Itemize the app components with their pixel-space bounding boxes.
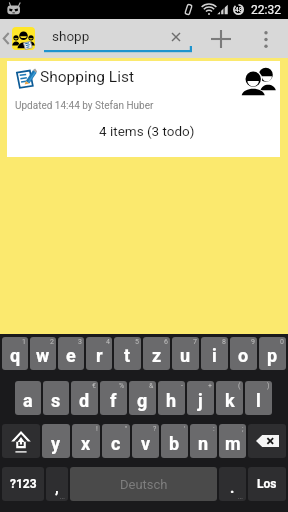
staticText: 48 <box>235 6 243 14</box>
button[interactable]: o <box>230 337 257 370</box>
button[interactable]: Shift <box>2 424 40 458</box>
staticText: 5 <box>135 338 139 346</box>
button[interactable]: u <box>172 337 199 370</box>
staticText: v <box>141 433 151 454</box>
button[interactable]: h <box>158 381 185 415</box>
button[interactable]: j <box>187 381 214 415</box>
staticText: ' <box>184 425 186 433</box>
staticText: s <box>51 390 61 411</box>
button[interactable]: q <box>2 337 28 370</box>
staticText: x <box>81 433 91 454</box>
staticText: b <box>169 433 180 454</box>
staticText: 0 <box>280 338 284 346</box>
staticText: , <box>55 479 59 497</box>
button[interactable]: s <box>43 381 69 415</box>
staticText: Los <box>257 477 277 491</box>
button[interactable]: v <box>132 424 159 458</box>
staticText: f <box>110 390 117 411</box>
staticText: 3 <box>78 338 82 346</box>
button[interactable]: Backspace <box>248 424 286 458</box>
staticText: 4 items (3 todo) <box>99 123 195 139</box>
button[interactable]: t <box>114 337 141 370</box>
staticText: € <box>92 382 96 390</box>
button[interactable]: z <box>143 337 170 370</box>
button[interactable]: g <box>129 381 156 415</box>
staticText: l <box>256 390 261 411</box>
staticText: ... <box>60 493 65 500</box>
button[interactable]: a <box>15 381 41 415</box>
staticText: d <box>79 390 90 411</box>
staticText: 8 <box>222 338 226 346</box>
staticText: Deutsch <box>120 477 168 492</box>
staticText: o <box>238 345 249 366</box>
staticText: . <box>230 479 235 497</box>
button[interactable]: Period <box>219 467 246 501</box>
button[interactable]: y <box>42 424 70 458</box>
staticText: 1 <box>22 338 26 346</box>
staticText: " <box>125 425 128 433</box>
staticText: Shopping List <box>40 68 135 86</box>
staticText: z <box>152 345 162 366</box>
button[interactable]: n <box>190 424 217 458</box>
staticText: i <box>212 345 217 366</box>
staticText: 9 <box>251 338 255 346</box>
button[interactable]: x <box>72 424 100 458</box>
staticText: ) <box>267 382 270 390</box>
staticText: h <box>166 390 177 411</box>
button[interactable]: Add <box>203 24 239 54</box>
staticText: n <box>198 433 209 454</box>
staticText: ?123 <box>10 477 37 491</box>
button[interactable]: c <box>102 424 130 458</box>
button[interactable]: ?123 <box>2 467 44 501</box>
staticText: 7 <box>193 338 197 346</box>
staticText: + <box>208 382 212 390</box>
staticText: 22:32 <box>251 3 281 17</box>
button[interactable]: k <box>216 381 243 415</box>
staticText: - <box>181 382 183 390</box>
staticText: 4 <box>106 338 110 346</box>
staticText: e <box>66 345 76 366</box>
staticText: j <box>198 390 203 411</box>
button[interactable]: l <box>245 381 272 415</box>
button[interactable]: w <box>30 337 56 370</box>
staticText: : <box>213 425 215 433</box>
staticText: m <box>225 433 241 454</box>
button[interactable]: Deutsch <box>70 467 217 501</box>
button[interactable]: e <box>58 337 84 370</box>
button[interactable]: i <box>201 337 228 370</box>
staticText: ; <box>242 425 244 433</box>
staticText: & <box>149 382 154 390</box>
button[interactable]: Comma <box>46 467 68 501</box>
button[interactable]: f <box>100 381 127 415</box>
button[interactable]: b <box>161 424 188 458</box>
staticText: Updated 14:44 by Stefan Huber <box>15 100 154 112</box>
staticText: c <box>111 433 121 454</box>
staticText: ... <box>238 493 243 500</box>
staticText: ! <box>96 425 98 433</box>
staticText: k <box>225 390 235 411</box>
button[interactable]: r <box>86 337 112 370</box>
staticText: a <box>23 390 33 411</box>
staticText: w <box>36 345 50 366</box>
button[interactable]: Clear search <box>166 27 186 47</box>
button[interactable]: App icon <box>12 27 35 50</box>
staticText: ( <box>238 382 241 390</box>
button[interactable]: Los <box>248 467 286 501</box>
button[interactable]: Navigate up <box>0 28 12 48</box>
staticText: 2 <box>50 338 54 346</box>
staticText: u <box>180 345 191 366</box>
button[interactable]: Shopping List <box>7 61 280 157</box>
staticText: r <box>96 345 103 366</box>
staticText: shopp <box>52 28 90 44</box>
staticText: q <box>10 345 21 366</box>
staticText: t <box>124 345 131 366</box>
button[interactable]: More options <box>252 24 280 54</box>
staticText: % <box>119 382 125 390</box>
button[interactable]: p <box>259 337 286 370</box>
staticText: y <box>51 433 61 454</box>
staticText: p <box>267 345 278 366</box>
button[interactable]: m <box>219 424 246 458</box>
staticText: 6 <box>164 338 168 346</box>
button[interactable]: d <box>71 381 98 415</box>
staticText: g <box>137 390 148 411</box>
